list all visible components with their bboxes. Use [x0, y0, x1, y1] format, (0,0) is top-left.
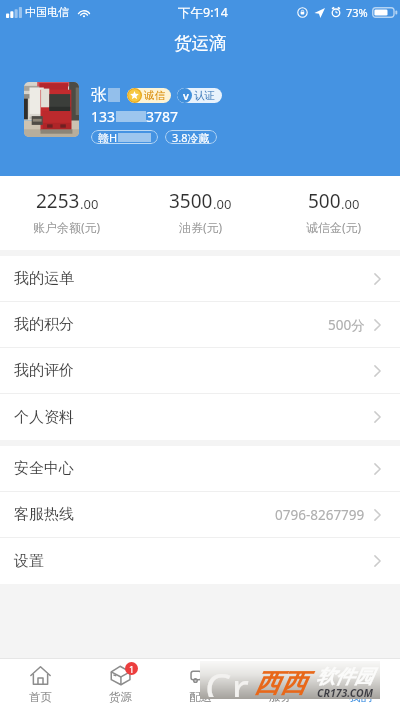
staticText: 安全中心	[14, 459, 74, 478]
staticText: 中国电信	[25, 5, 69, 19]
staticText: 设置	[14, 552, 44, 571]
staticText: 1	[129, 663, 135, 675]
staticText: .00	[80, 195, 99, 213]
button[interactable]: 1	[80, 659, 160, 710]
staticText: 我的	[349, 690, 372, 704]
button[interactable]: 个人资料	[0, 394, 400, 440]
staticText: 个人资料	[14, 408, 74, 427]
button[interactable]: 设置	[0, 538, 400, 584]
staticText: 2253	[36, 188, 80, 214]
button[interactable]: 服务	[240, 659, 320, 710]
staticText: Cr	[205, 659, 249, 697]
button[interactable]: 首页	[0, 659, 80, 710]
button[interactable]: 我的	[320, 659, 400, 710]
staticText: 客服热线	[14, 505, 74, 524]
staticText: V	[183, 90, 189, 102]
staticText: 133	[91, 107, 116, 126]
staticText: 下午9:14	[178, 4, 228, 21]
staticText: 我的积分	[14, 315, 74, 334]
staticText: 软件园	[316, 665, 373, 689]
staticText: 西西	[254, 667, 306, 700]
staticText: 赣H	[98, 130, 118, 144]
staticText: 首页	[29, 690, 52, 704]
staticText: 配送	[189, 690, 212, 704]
button[interactable]: 安全中心	[0, 446, 400, 492]
button[interactable]: 我的积分	[0, 302, 400, 348]
staticText: CR173.COM	[317, 686, 373, 700]
staticText: 张	[91, 85, 107, 105]
staticText: 油券(元)	[179, 219, 223, 235]
staticText: 诚信	[144, 89, 165, 102]
staticText: 认证	[194, 89, 215, 102]
staticText: 0796-8267799	[275, 506, 365, 524]
staticText: 账户余额(元)	[33, 219, 101, 235]
staticText: 500分	[328, 316, 365, 334]
staticText: 诚信金(元)	[306, 219, 362, 235]
staticText: 3.8冷藏	[172, 130, 210, 144]
staticText: 服务	[269, 690, 292, 704]
staticText: 3787	[146, 107, 179, 126]
staticText: .00	[341, 195, 360, 213]
staticText: 500	[308, 188, 341, 214]
staticText: 3500	[169, 188, 213, 214]
button[interactable]: 我的运单	[0, 256, 400, 302]
button[interactable]: 我的评价	[0, 348, 400, 394]
staticText: 货运滴	[174, 32, 227, 54]
staticText: 73%	[346, 5, 368, 20]
staticText: 我的评价	[14, 361, 74, 380]
staticText: 我的运单	[14, 269, 74, 288]
button[interactable]: 配送	[160, 659, 240, 710]
button[interactable]: 客服热线	[0, 492, 400, 538]
staticText: 货源	[109, 690, 132, 704]
staticText: .00	[213, 195, 232, 213]
